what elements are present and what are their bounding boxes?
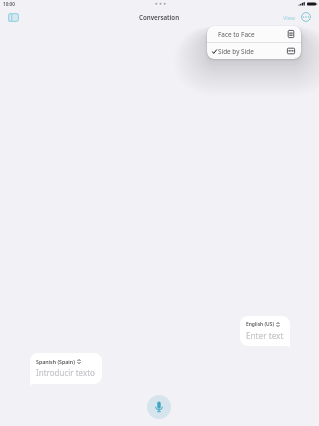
button[interactable]: Toggle sidebar xyxy=(8,13,19,22)
staticText: Spanish (Spain) xyxy=(36,358,75,365)
staticText: Side by Side xyxy=(218,47,254,56)
staticText: Enter text xyxy=(246,330,284,341)
button[interactable]: Side by Side xyxy=(207,43,301,59)
staticText: Conversation xyxy=(139,13,180,21)
button[interactable]: English (US) xyxy=(240,316,290,346)
staticText: Introducir texto xyxy=(36,367,95,378)
staticText: English (US) xyxy=(246,321,274,328)
staticText: 10:00 xyxy=(3,1,15,7)
staticText: Face to Face xyxy=(218,30,255,39)
button[interactable]: View xyxy=(283,14,296,21)
button[interactable]: More options xyxy=(301,12,311,22)
button[interactable]: Spanish (Spain) xyxy=(30,353,102,384)
button[interactable]: Microphone xyxy=(147,395,171,419)
button[interactable]: Face to Face xyxy=(207,26,301,42)
